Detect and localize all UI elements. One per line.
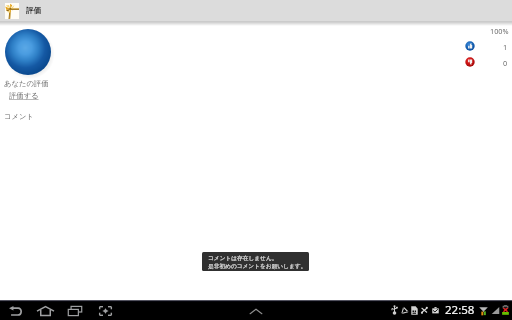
staticText: 100% [490, 26, 509, 36]
staticText: 評価する [9, 91, 39, 100]
button[interactable]: 評価する [9, 91, 39, 100]
staticText: あなたの評価 [4, 79, 49, 88]
staticText: コメントは存在しません。 [208, 255, 278, 262]
button[interactable]: Notifications [247, 302, 265, 320]
staticText: 1 [503, 42, 508, 52]
staticText: コメント [4, 112, 34, 121]
button[interactable]: 評価 [0, 0, 47, 21]
button[interactable]: Recent apps [66, 302, 84, 320]
staticText: 評価 [26, 6, 41, 15]
button[interactable]: Home [36, 302, 54, 320]
staticText: 22:58 [445, 302, 475, 318]
button[interactable]: Screenshot [96, 302, 114, 320]
button[interactable]: Like [465, 41, 475, 51]
button[interactable]: Back [6, 302, 24, 320]
button[interactable]: Dislike [465, 57, 475, 67]
staticText: 0 [503, 58, 508, 68]
staticText: 是非初めのコメントをお願いします。 [208, 263, 307, 270]
